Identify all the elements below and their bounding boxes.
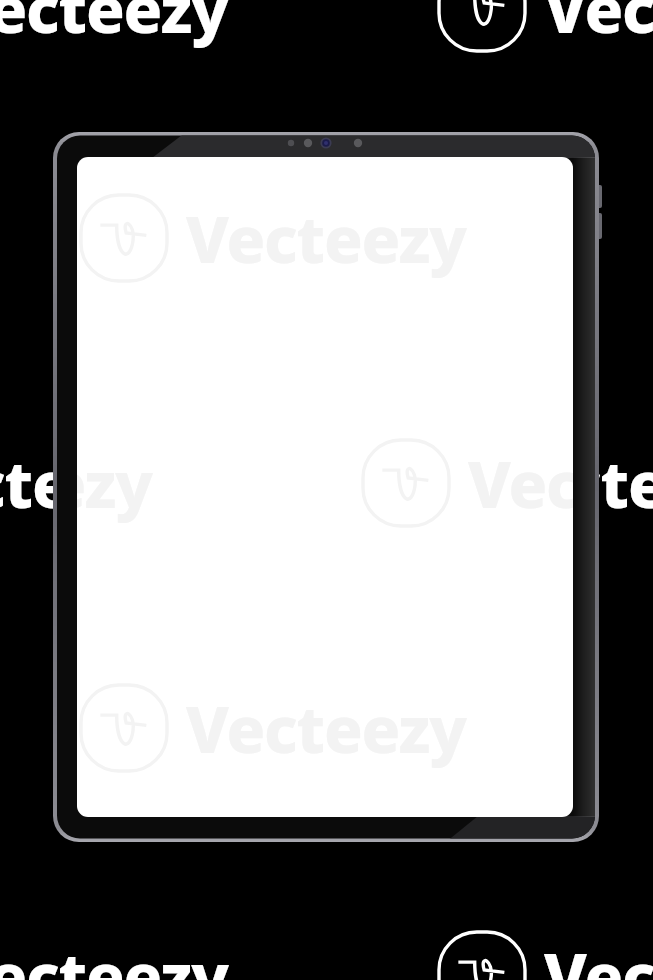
button[interactable]: Tablet device mockup with blank white sc…	[0, 0, 653, 980]
